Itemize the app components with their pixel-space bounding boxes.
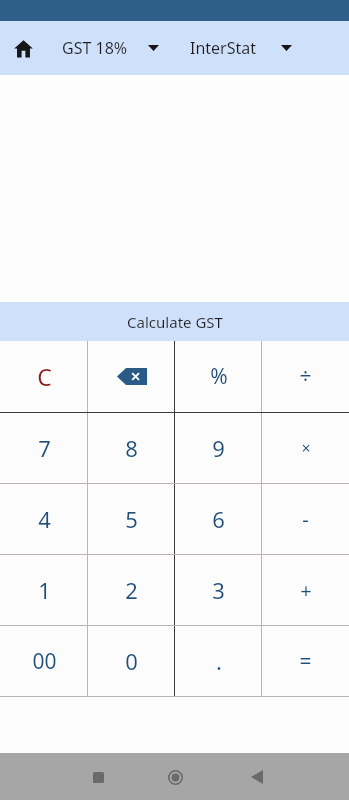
button[interactable]: ÷ — [262, 341, 349, 412]
staticText: GST 18% — [62, 37, 128, 59]
button[interactable]: Recent apps — [83, 762, 113, 792]
button[interactable]: 0 — [88, 626, 175, 696]
button[interactable]: - — [262, 484, 349, 554]
staticText: Calculate GST — [127, 312, 223, 332]
staticText: C — [37, 361, 52, 392]
button[interactable]: Home — [8, 33, 38, 63]
button[interactable]: 7 — [0, 413, 88, 483]
button[interactable]: 2 — [88, 555, 175, 625]
staticText: 8 — [125, 433, 138, 463]
staticText: 5 — [125, 504, 138, 534]
staticText: × — [301, 437, 311, 459]
button[interactable]: 5 — [88, 484, 175, 554]
staticText: 00 — [32, 647, 57, 676]
button[interactable]: % — [175, 341, 262, 412]
staticText: 1 — [38, 575, 51, 605]
staticText: + — [300, 577, 312, 604]
button[interactable]: InterStat — [190, 37, 292, 59]
button[interactable]: × — [262, 413, 349, 483]
button[interactable]: 8 — [88, 413, 175, 483]
staticText: 7 — [38, 433, 51, 463]
staticText: 3 — [212, 575, 225, 605]
button[interactable]: Backspace — [88, 341, 175, 412]
button[interactable]: + — [262, 555, 349, 625]
staticText: 0 — [125, 646, 138, 676]
staticText: - — [302, 506, 309, 533]
button[interactable]: 1 — [0, 555, 88, 625]
staticText: % — [210, 362, 228, 391]
staticText: 4 — [38, 504, 51, 534]
staticText: 6 — [212, 504, 225, 534]
button[interactable]: C — [0, 341, 88, 412]
staticText: = — [299, 647, 312, 676]
staticText: ÷ — [299, 362, 312, 391]
button[interactable]: Home — [159, 761, 191, 793]
button[interactable]: Back — [242, 762, 272, 792]
button[interactable]: 9 — [175, 413, 262, 483]
staticText: . — [216, 646, 222, 676]
button[interactable]: . — [175, 626, 262, 696]
button[interactable]: Calculate GST — [0, 302, 349, 341]
staticText: InterStat — [190, 37, 257, 59]
button[interactable]: 3 — [175, 555, 262, 625]
staticText: 2 — [125, 575, 138, 605]
button[interactable]: GST 18% — [62, 37, 159, 59]
button[interactable]: 4 — [0, 484, 88, 554]
button[interactable]: = — [262, 626, 349, 696]
button[interactable]: 00 — [0, 626, 88, 696]
staticText: 9 — [212, 433, 225, 463]
button[interactable]: 6 — [175, 484, 262, 554]
